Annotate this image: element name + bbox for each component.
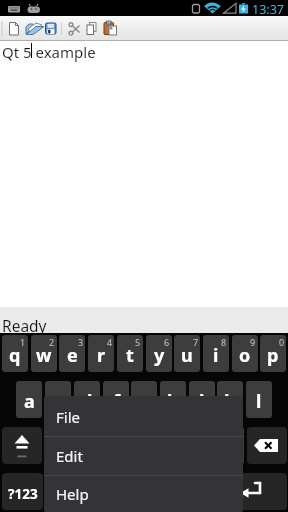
staticText: d <box>81 389 93 414</box>
staticText: 4 <box>107 336 113 348</box>
button[interactable]: Help <box>44 476 243 512</box>
button[interactable]: i <box>203 335 229 372</box>
button[interactable]: s <box>45 381 71 418</box>
button[interactable]: p <box>260 335 286 372</box>
staticText: t <box>126 343 134 368</box>
button[interactable]: r <box>88 335 114 372</box>
button[interactable]: q <box>2 335 28 372</box>
button[interactable] <box>42 18 60 39</box>
staticText: f <box>113 389 120 414</box>
staticText: 3 <box>78 336 84 348</box>
button[interactable] <box>5 18 23 39</box>
staticText: i <box>213 343 219 368</box>
button[interactable]: t <box>117 335 143 372</box>
staticText: a <box>24 389 35 414</box>
staticText: 13:37 <box>252 1 284 17</box>
staticText: 6 <box>164 336 170 348</box>
button[interactable]: o <box>232 335 258 372</box>
button[interactable]: l <box>246 381 272 418</box>
staticText: b <box>168 435 180 460</box>
staticText: e <box>67 343 78 368</box>
staticText: 5 <box>135 336 141 348</box>
staticText: z <box>55 435 64 460</box>
button[interactable]: n <box>189 427 215 464</box>
staticText: x <box>82 435 93 460</box>
staticText: 7 <box>193 336 199 348</box>
staticText: m <box>222 435 240 460</box>
button[interactable] <box>2 427 42 464</box>
staticText: g <box>138 389 150 414</box>
button[interactable] <box>46 473 72 510</box>
staticText: n <box>196 435 208 460</box>
button[interactable]: x <box>74 427 100 464</box>
button[interactable] <box>247 427 287 464</box>
staticText: q <box>9 343 21 368</box>
button[interactable]: z <box>46 427 72 464</box>
staticText: l <box>256 389 262 414</box>
staticText: ?123 <box>8 485 38 503</box>
button[interactable]: a <box>16 381 42 418</box>
button[interactable] <box>23 18 41 39</box>
staticText: y <box>154 343 165 368</box>
staticText: v <box>140 435 151 460</box>
button[interactable]: j <box>189 381 215 418</box>
button[interactable]: w <box>31 335 57 372</box>
staticText: 1 <box>20 336 26 348</box>
button[interactable]: e <box>59 335 85 372</box>
button[interactable] <box>65 18 83 39</box>
staticText: Ready <box>2 315 47 336</box>
button[interactable] <box>230 473 287 510</box>
staticText: File <box>56 407 80 427</box>
button[interactable]: ?123 <box>2 473 43 510</box>
button[interactable]: d <box>74 381 100 418</box>
staticText: 2 <box>49 336 55 348</box>
button[interactable]: g <box>131 381 157 418</box>
staticText: s <box>53 389 63 414</box>
button[interactable]: . <box>216 473 242 510</box>
staticText: Qt 5 example <box>2 42 96 62</box>
button[interactable]: h <box>160 381 186 418</box>
staticText: 0 <box>279 336 285 348</box>
button[interactable]: File <box>44 398 243 436</box>
button[interactable] <box>74 473 214 510</box>
button[interactable]: y <box>146 335 172 372</box>
button[interactable]: c <box>103 427 129 464</box>
staticText: h <box>167 389 179 414</box>
button[interactable] <box>83 18 101 39</box>
button[interactable]: b <box>161 427 187 464</box>
staticText: r <box>97 343 106 368</box>
staticText: u <box>181 343 193 368</box>
staticText: Edit <box>56 446 83 466</box>
staticText: o <box>239 343 251 368</box>
staticText: 8 <box>221 336 227 348</box>
staticText: p <box>267 343 279 368</box>
button[interactable]: Edit <box>44 437 243 475</box>
button[interactable]: k <box>217 381 243 418</box>
staticText: c <box>111 435 121 460</box>
button[interactable]: f <box>103 381 129 418</box>
button[interactable]: u <box>174 335 200 372</box>
button[interactable]: Qt 5 example <box>0 41 288 307</box>
button[interactable]: v <box>132 427 158 464</box>
button[interactable]: m <box>218 427 244 464</box>
staticText: Help <box>56 484 89 504</box>
staticText: k <box>224 389 236 414</box>
staticText: j <box>199 389 205 414</box>
staticText: 9 <box>250 336 256 348</box>
button[interactable] <box>102 18 120 39</box>
staticText: w <box>36 343 52 368</box>
